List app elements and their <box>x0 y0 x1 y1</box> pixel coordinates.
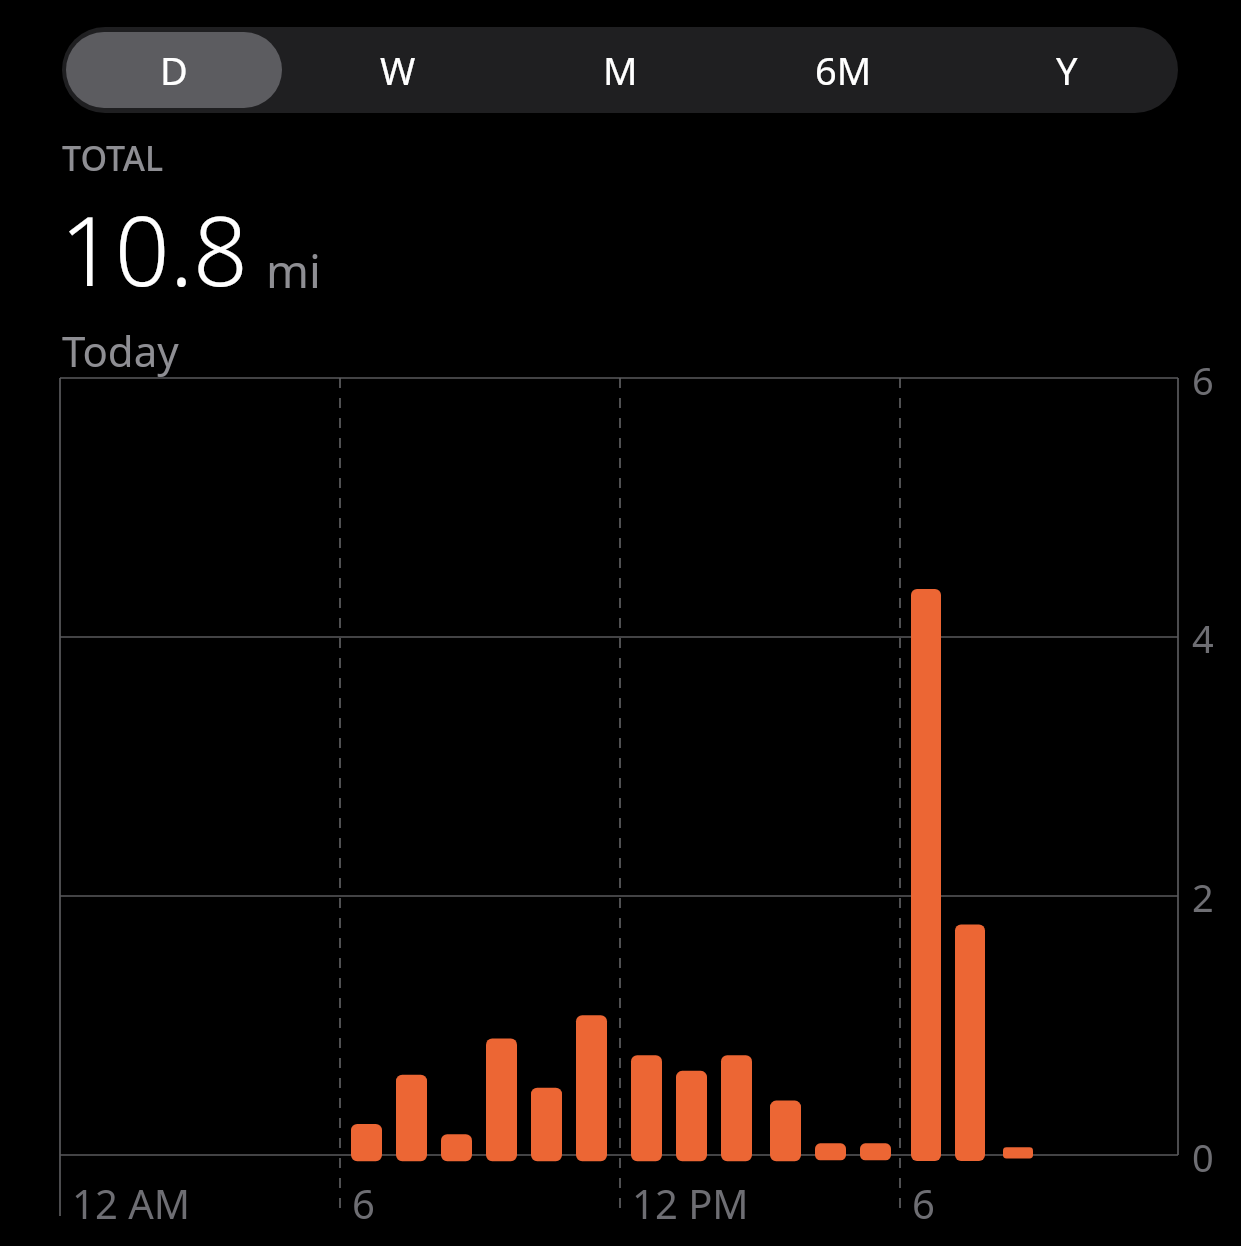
button[interactable]: Y <box>959 32 1174 108</box>
staticText: mi <box>266 239 321 302</box>
staticText: 12 AM <box>72 1176 190 1230</box>
staticText: 6 <box>1192 354 1214 406</box>
button[interactable]: D <box>66 32 282 108</box>
staticText: 6M <box>815 44 872 96</box>
staticText: 10.8 <box>60 183 248 314</box>
button[interactable]: W <box>290 32 505 108</box>
button[interactable]: M <box>513 32 728 108</box>
staticText: D <box>160 44 188 96</box>
staticText: M <box>603 44 638 96</box>
staticText: W <box>380 44 416 96</box>
button[interactable]: 6M <box>736 32 951 108</box>
staticText: 12 PM <box>632 1176 749 1230</box>
staticText: 0 <box>1192 1131 1214 1183</box>
staticText: 6 <box>912 1176 935 1230</box>
staticText: TOTAL <box>62 135 164 181</box>
staticText: Y <box>1056 44 1078 96</box>
staticText: 6 <box>352 1176 375 1230</box>
staticText: 4 <box>1192 612 1214 664</box>
staticText: 2 <box>1192 871 1214 923</box>
staticText: Today <box>62 322 179 379</box>
